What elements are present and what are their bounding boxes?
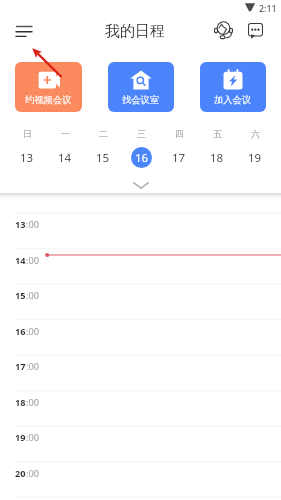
staticText: 二 <box>99 128 108 139</box>
staticText: 13 <box>20 150 34 166</box>
staticText: 找会议室 <box>122 94 160 106</box>
button[interactable]: 找会议室 <box>108 62 174 112</box>
staticText: :00 <box>26 218 39 231</box>
staticText: 16 <box>15 325 26 338</box>
button[interactable]: 17 <box>160 147 198 168</box>
staticText: 16 <box>135 150 149 166</box>
staticText: 2:11 <box>259 3 277 15</box>
staticText: 15 <box>96 150 110 166</box>
staticText: 四 <box>175 128 184 139</box>
staticText: 三 <box>137 128 146 139</box>
staticText: :00 <box>26 325 39 338</box>
staticText: 约视频会议 <box>25 94 72 106</box>
staticText: 19 <box>15 431 26 444</box>
button[interactable]: 13 <box>8 147 46 168</box>
staticText: 我的日程 <box>105 22 165 41</box>
button[interactable]: 18 <box>198 147 236 168</box>
staticText: 14 <box>15 254 26 267</box>
staticText: :00 <box>26 254 39 267</box>
staticText: 17 <box>172 150 186 166</box>
staticText: 五 <box>213 128 222 139</box>
button[interactable]: Menu <box>8 19 40 43</box>
staticText: 18 <box>210 150 224 166</box>
staticText: 17 <box>15 360 26 373</box>
staticText: 15 <box>15 289 26 302</box>
staticText: 20 <box>15 467 26 480</box>
button[interactable]: Expand calendar <box>124 172 157 189</box>
button[interactable]: 15 <box>84 147 122 168</box>
staticText: 18 <box>15 396 26 409</box>
button[interactable]: 19 <box>236 147 274 168</box>
button[interactable]: 加入会议 <box>200 62 266 112</box>
button[interactable]: Messages <box>242 18 268 44</box>
staticText: :00 <box>26 289 39 302</box>
staticText: 14 <box>58 150 72 166</box>
button[interactable]: Customer service <box>210 17 236 43</box>
button[interactable]: 约视频会议 <box>15 62 82 112</box>
staticText: :00 <box>26 467 39 480</box>
staticText: 19 <box>248 150 262 166</box>
staticText: 日 <box>23 128 32 139</box>
staticText: :00 <box>26 396 39 409</box>
button[interactable]: 16 <box>122 147 160 168</box>
staticText: 13 <box>15 218 26 231</box>
staticText: 一 <box>61 128 70 139</box>
staticText: :00 <box>26 431 39 444</box>
button[interactable]: 14 <box>46 147 84 168</box>
staticText: 加入会议 <box>214 94 252 106</box>
staticText: :00 <box>26 360 39 373</box>
staticText: 六 <box>251 128 260 139</box>
